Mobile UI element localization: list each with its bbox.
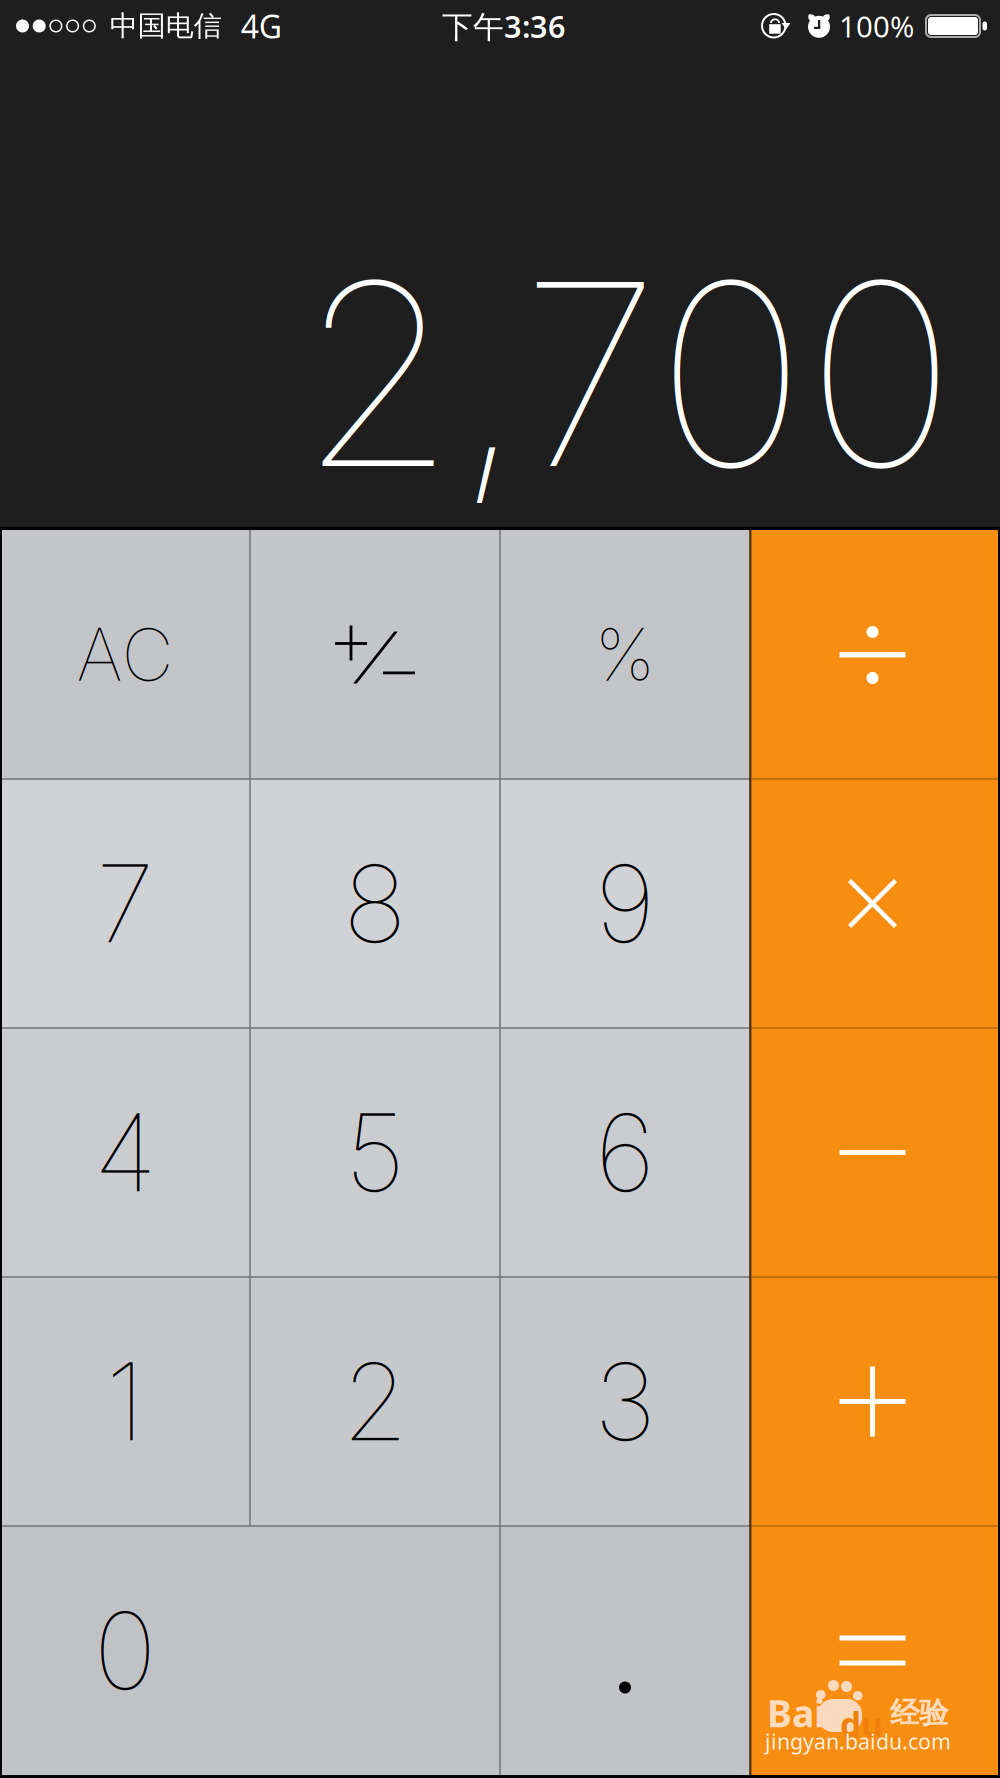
button[interactable]: 9 — [500, 779, 750, 1028]
button[interactable]: Subtract — [750, 1028, 1000, 1277]
staticText: 1 — [105, 1337, 144, 1466]
button[interactable]: Equals — [750, 1526, 1000, 1775]
staticText: 经验 — [890, 1695, 948, 1731]
staticText: du — [840, 1702, 883, 1746]
staticText: % — [594, 611, 655, 698]
staticText: 4 — [93, 1088, 156, 1217]
button[interactable]: 3 — [500, 1277, 750, 1526]
button[interactable]: Divide — [750, 530, 1000, 779]
button[interactable]: AC — [0, 530, 250, 779]
button[interactable]: 1 — [0, 1277, 250, 1526]
button[interactable]: Add — [750, 1277, 1000, 1526]
button[interactable]: 4 — [0, 1028, 250, 1277]
button[interactable]: % — [500, 530, 750, 779]
staticText: 中国电信 — [110, 9, 222, 43]
staticText: 100% — [839, 6, 914, 45]
staticText: AC — [76, 611, 173, 698]
button[interactable]: 5 — [250, 1028, 500, 1277]
staticText: 7 — [96, 839, 154, 968]
button[interactable]: 7 — [0, 779, 250, 1028]
staticText: 9 — [595, 839, 655, 968]
button[interactable]: Toggle sign — [250, 530, 500, 779]
staticText: 下午3:36 — [442, 6, 566, 46]
staticText: 5 — [345, 1088, 405, 1217]
button[interactable]: 0 — [0, 1526, 500, 1775]
staticText: 3 — [594, 1337, 656, 1466]
button[interactable]: 2 — [250, 1277, 500, 1526]
staticText: Bai — [767, 1688, 825, 1738]
staticText: jingyan.baidu.com — [765, 1727, 951, 1755]
staticText: 2,700 — [299, 220, 956, 527]
button[interactable]: 8 — [250, 779, 500, 1028]
staticText: 2 — [342, 1337, 408, 1466]
staticText: 6 — [595, 1088, 655, 1217]
button[interactable]: Multiply — [750, 779, 1000, 1028]
staticText: 4G — [241, 5, 282, 47]
staticText: 8 — [343, 839, 407, 968]
staticText: 0 — [93, 1586, 156, 1715]
button[interactable]: Decimal point — [500, 1526, 750, 1775]
button[interactable]: 6 — [500, 1028, 750, 1277]
